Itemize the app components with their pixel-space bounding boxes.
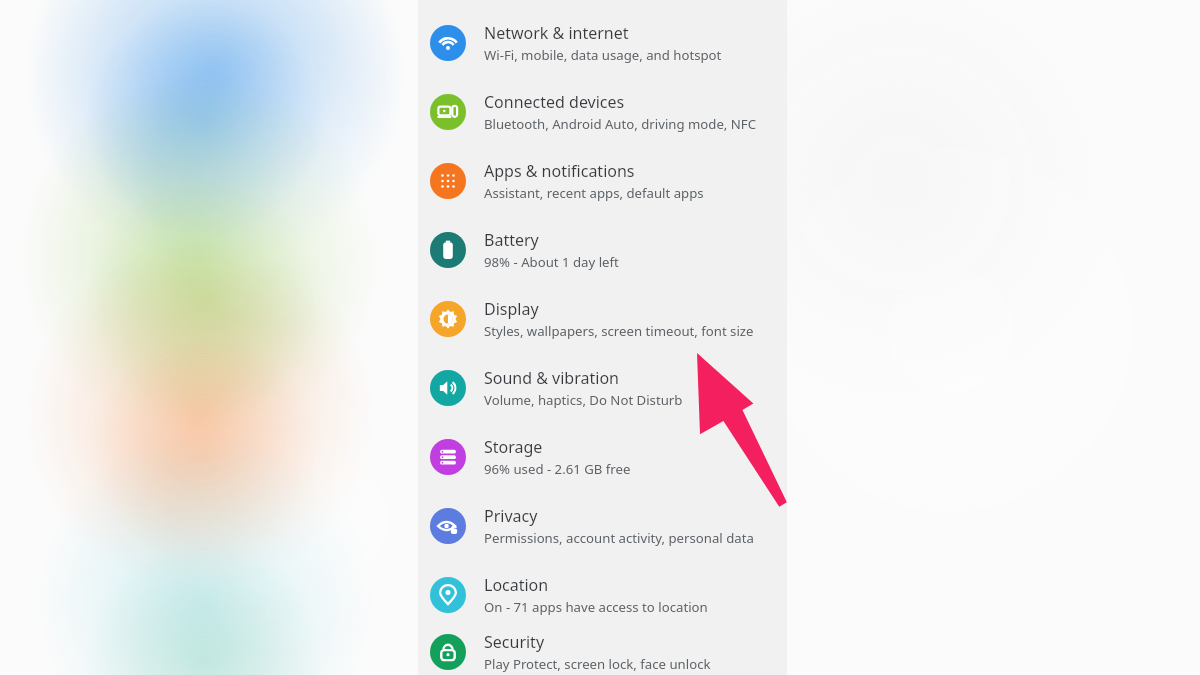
button[interactable]: Display xyxy=(418,284,787,353)
staticText: Sound & vibration xyxy=(484,367,619,389)
staticText: Security xyxy=(484,631,545,653)
button[interactable]: Location xyxy=(418,560,787,629)
staticText: Apps & notifications xyxy=(484,160,635,182)
staticText: Display xyxy=(484,298,539,320)
staticText: Volume, haptics, Do Not Disturb xyxy=(484,391,683,409)
staticText: Battery xyxy=(484,229,539,251)
button[interactable]: Battery xyxy=(418,215,787,284)
staticText: Assistant, recent apps, default apps xyxy=(484,184,704,202)
button[interactable]: Security xyxy=(418,629,787,675)
staticText: Storage xyxy=(484,436,543,458)
staticText: Play Protect, screen lock, face unlock xyxy=(484,655,711,673)
button[interactable]: Connected devices xyxy=(418,77,787,146)
staticText: Bluetooth, Android Auto, driving mode, N… xyxy=(484,115,756,133)
staticText: Network & internet xyxy=(484,22,629,44)
staticText: 98% - About 1 day left xyxy=(484,253,619,271)
button[interactable]: Network & internet xyxy=(418,8,787,77)
staticText: Connected devices xyxy=(484,91,625,113)
staticText: Location xyxy=(484,574,549,596)
button[interactable]: Privacy xyxy=(418,491,787,560)
staticText: On - 71 apps have access to location xyxy=(484,598,708,616)
staticText: Privacy xyxy=(484,505,538,527)
button[interactable]: Storage xyxy=(418,422,787,491)
button[interactable]: Apps & notifications xyxy=(418,146,787,215)
staticText: Styles, wallpapers, screen timeout, font… xyxy=(484,322,754,340)
other: Pointer arrow xyxy=(0,0,1200,675)
staticText: Permissions, account activity, personal … xyxy=(484,529,754,547)
button[interactable]: Sound & vibration xyxy=(418,353,787,422)
staticText: Wi-Fi, mobile, data usage, and hotspot xyxy=(484,46,722,64)
staticText: 96% used - 2.61 GB free xyxy=(484,460,631,478)
